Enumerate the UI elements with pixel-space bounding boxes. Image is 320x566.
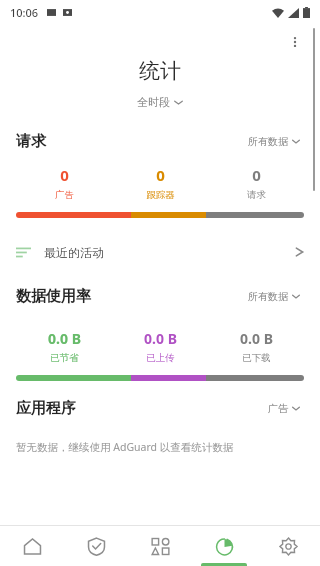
button[interactable]: Apps	[128, 526, 192, 566]
staticText: 0.0 B	[48, 329, 81, 348]
staticText: 0.0 B	[240, 329, 273, 348]
staticText: 已下载	[242, 352, 271, 364]
button[interactable]: 所有数据	[244, 132, 304, 151]
staticText: 请求	[16, 132, 46, 151]
staticText: 统计	[139, 58, 181, 84]
button[interactable]: Protection	[64, 526, 128, 566]
button[interactable]: 0.0 B	[112, 329, 208, 364]
button[interactable]: Settings	[256, 526, 320, 566]
staticText: 已节省	[50, 352, 79, 364]
staticText: 数据使用率	[16, 287, 91, 306]
staticText: 应用程序	[16, 399, 76, 418]
button[interactable]: 0.0 B	[16, 329, 112, 364]
button[interactable]: 0	[112, 165, 208, 201]
button[interactable]: 所有数据	[244, 287, 304, 306]
staticText: 已上传	[146, 352, 175, 364]
staticText: 请求	[247, 189, 266, 201]
staticText: 0	[60, 165, 69, 185]
button[interactable]: More options	[280, 27, 310, 57]
staticText: 暂无数据，继续使用 AdGuard 以查看统计数据	[16, 440, 234, 454]
button[interactable]: 0.0 B	[208, 329, 304, 364]
staticText: 0.0 B	[144, 329, 177, 348]
staticText: 最近的活动	[44, 245, 104, 260]
button[interactable]: 最近的活动	[0, 235, 320, 269]
staticText: 全时段	[137, 95, 170, 109]
staticText: 广告	[268, 402, 288, 415]
button[interactable]: 全时段	[131, 93, 189, 111]
staticText: 10:06	[10, 5, 39, 20]
staticText: 0	[156, 165, 165, 185]
staticText: 0	[252, 165, 261, 185]
button[interactable]: Statistics	[192, 526, 256, 566]
staticText: 广告	[55, 189, 74, 201]
staticText: 所有数据	[248, 135, 288, 148]
staticText: 所有数据	[248, 290, 288, 303]
button[interactable]: 广告	[264, 399, 304, 418]
button[interactable]: 0	[208, 165, 304, 201]
button[interactable]: 0	[16, 165, 112, 201]
button[interactable]: Home	[0, 526, 64, 566]
staticText: 跟踪器	[146, 189, 175, 201]
